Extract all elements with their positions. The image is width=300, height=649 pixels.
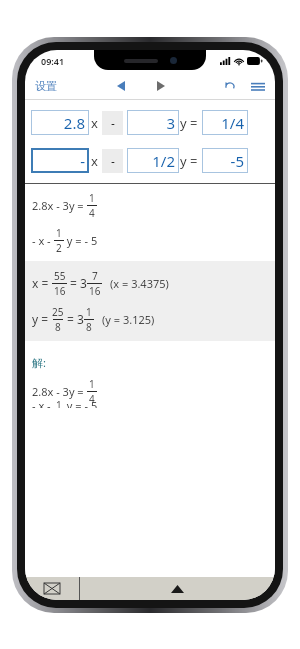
button[interactable]: - <box>31 148 89 173</box>
staticText: 16 <box>54 284 66 298</box>
staticText: 4 <box>89 392 95 406</box>
staticText: = <box>190 114 198 132</box>
staticText: = <box>190 152 198 170</box>
button[interactable]: Menu <box>247 77 275 95</box>
staticText: 55 <box>54 269 66 283</box>
button[interactable]: 1/2 <box>127 148 179 173</box>
staticText: 1 <box>86 305 92 319</box>
button[interactable]: Mail <box>25 577 79 600</box>
staticText: 1 <box>89 191 95 205</box>
staticText: 2.8x - 3y = <box>32 198 87 213</box>
staticText: - x - <box>32 233 54 248</box>
button[interactable]: 1/4 <box>202 110 248 135</box>
button[interactable]: 3 <box>127 110 179 135</box>
button[interactable]: - <box>102 111 123 135</box>
staticText: - <box>111 153 115 169</box>
button[interactable]: - <box>102 149 123 173</box>
staticText: 25 <box>52 305 64 319</box>
staticText: x = <box>32 275 52 291</box>
staticText: y = <box>32 311 52 327</box>
button[interactable]: Undo <box>219 76 241 96</box>
staticText: 1/2 <box>152 151 175 171</box>
staticText: y = - 5 <box>64 233 98 248</box>
staticText: (x = 3.4375) <box>110 276 169 291</box>
staticText: y <box>180 152 187 170</box>
staticText: 2.8 <box>63 113 85 133</box>
staticText: y = - 5 <box>64 398 98 408</box>
button[interactable]: Previous <box>109 77 133 95</box>
staticText: 3 <box>166 113 175 133</box>
button[interactable]: Next <box>149 77 173 95</box>
staticText: y <box>180 114 187 132</box>
staticText: 8 <box>55 320 61 334</box>
staticText: 7 <box>92 269 98 283</box>
staticText: 8 <box>86 320 92 334</box>
staticText: - <box>80 151 85 171</box>
button[interactable]: -5 <box>202 148 248 173</box>
staticText: 16 <box>89 284 101 298</box>
staticText: 2 <box>56 241 62 255</box>
staticText: 1 <box>56 226 62 240</box>
staticText: 2.8x - 3y = <box>32 384 87 399</box>
staticText: = 3 <box>64 311 84 327</box>
staticText: 解: <box>32 355 46 370</box>
staticText: x <box>91 152 98 170</box>
button[interactable]: 设置 <box>25 75 63 97</box>
button[interactable]: Scroll up <box>80 577 275 600</box>
staticText: = 3 <box>67 275 87 291</box>
staticText: 09:41 <box>41 55 65 67</box>
staticText: (y = 3.125) <box>102 312 155 327</box>
staticText: x <box>91 114 98 132</box>
staticText: 1/4 <box>221 113 244 133</box>
staticText: 1 <box>89 377 95 391</box>
staticText: -5 <box>230 151 244 171</box>
staticText: 4 <box>89 206 95 220</box>
staticText: - <box>111 115 115 131</box>
staticText: 设置 <box>35 79 57 93</box>
staticText: 1 <box>56 398 62 408</box>
staticText: - x - <box>32 398 54 408</box>
button[interactable]: 2.8 <box>31 110 89 135</box>
